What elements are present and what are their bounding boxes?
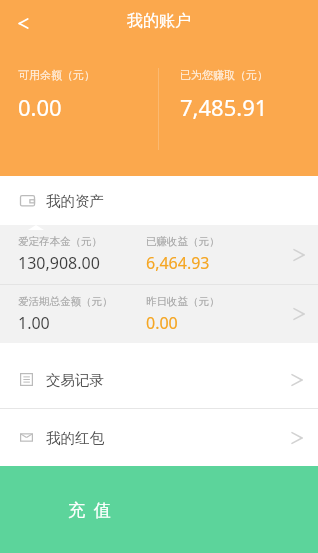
staticText: 0.00	[18, 92, 62, 122]
staticText: 我的资产	[46, 192, 104, 210]
staticText: 130,908.00	[18, 252, 100, 274]
staticText: 我的红包	[46, 429, 104, 447]
staticText: 交易记录	[46, 371, 104, 389]
staticText: 昨日收益（元）	[146, 295, 220, 308]
staticText: 6,464.93	[146, 252, 210, 274]
button[interactable]: 充 值	[0, 466, 318, 553]
staticText: 可用余额（元）	[18, 68, 95, 82]
button[interactable]: 我的红包	[0, 409, 318, 466]
staticText: 爱定存本金（元）	[18, 235, 102, 248]
staticText: 7,485.91	[180, 92, 268, 122]
button[interactable]: Back	[8, 8, 38, 38]
button[interactable]: 爱定存本金（元）	[0, 225, 318, 284]
button[interactable]: 爱活期总金额（元）	[0, 285, 318, 343]
staticText: 已为您赚取（元）	[180, 68, 268, 82]
staticText: 1.00	[18, 312, 50, 334]
button[interactable]: 我的资产	[0, 176, 318, 225]
staticText: 0.00	[146, 312, 178, 334]
staticText: 充 值	[68, 498, 111, 521]
staticText: 我的账户	[0, 11, 318, 31]
staticText: 爱活期总金额（元）	[18, 295, 113, 308]
button[interactable]: 交易记录	[0, 351, 318, 408]
staticText: 已赚收益（元）	[146, 235, 220, 248]
